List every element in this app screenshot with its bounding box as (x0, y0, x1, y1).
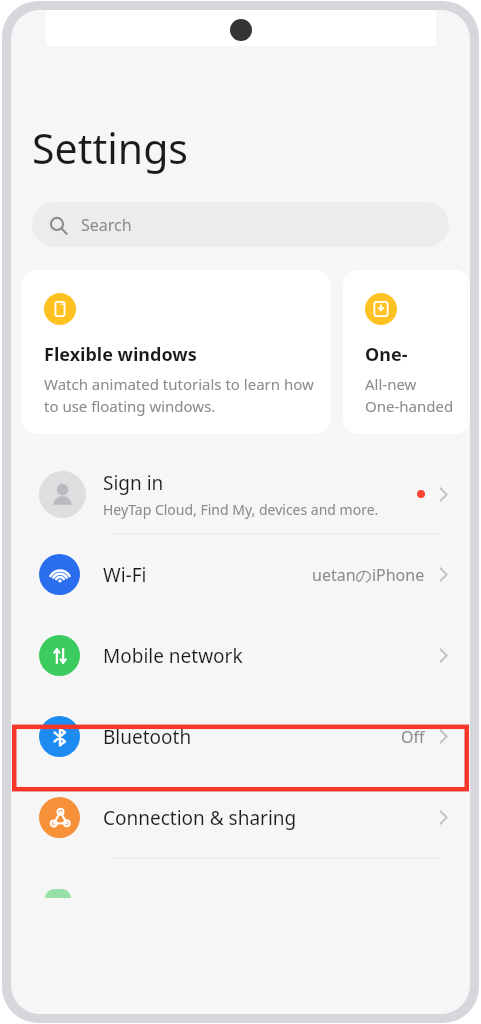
button[interactable]: Connection & sharing (11, 777, 470, 858)
staticText: Watch animated tutorials to learn how to… (44, 374, 314, 417)
staticText: Search (81, 214, 132, 236)
staticText: HeyTap Cloud, Find My, devices and more. (103, 500, 379, 519)
button[interactable]: Search (32, 202, 449, 247)
staticText: Connection & sharing (103, 805, 438, 831)
staticText: Bluetooth (103, 724, 401, 750)
staticText: Settings (32, 120, 189, 176)
staticText: Sign in (103, 470, 164, 496)
button[interactable]: Flexible windows (22, 270, 330, 434)
staticText: Wi-Fi (103, 562, 312, 588)
staticText: uetanのiPhone (312, 564, 425, 586)
button[interactable]: Bluetooth (11, 696, 470, 777)
staticText: One-handed mode (365, 342, 454, 367)
button[interactable]: Wi-Fi (11, 534, 470, 615)
button[interactable]: One-handed mode (343, 270, 470, 434)
staticText: Off (401, 726, 425, 748)
button[interactable]: Mobile network (11, 615, 470, 696)
staticText: Flexible windows (44, 342, 197, 367)
staticText: Mobile network (103, 643, 438, 669)
staticText: All-new One-handed mode for easy reach. (365, 374, 454, 417)
button[interactable]: Sign in (11, 455, 470, 533)
